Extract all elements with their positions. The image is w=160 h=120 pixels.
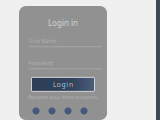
button[interactable]: Password (24, 59, 101, 69)
button[interactable]: User Name (24, 37, 101, 47)
button[interactable]: Sign in with Google (80, 107, 87, 114)
staticText: Login in (48, 18, 78, 28)
button[interactable]: Sign in with GitHub (48, 107, 55, 114)
staticText: Login (53, 80, 73, 89)
staticText: Password (28, 59, 52, 66)
button[interactable]: Sign in with Twitter (32, 107, 39, 114)
button[interactable]: Sign in with Facebook (64, 107, 71, 114)
staticText: Введите ваш логин и пароль (28, 93, 98, 100)
staticText: User Name (28, 37, 56, 44)
button[interactable]: Login (31, 77, 94, 91)
